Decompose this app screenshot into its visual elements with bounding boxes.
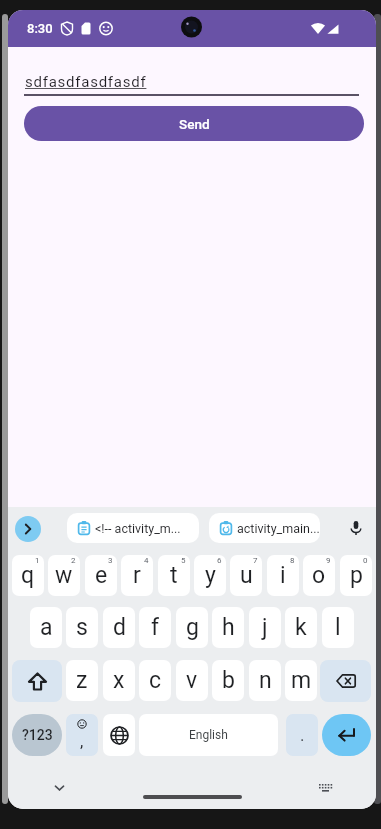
button[interactable]: Send — [24, 106, 364, 141]
staticText: n — [259, 667, 272, 694]
staticText: h — [222, 614, 235, 641]
staticText: i — [280, 562, 286, 589]
button[interactable] — [322, 714, 371, 756]
button[interactable]: z — [66, 660, 98, 701]
staticText: s — [76, 614, 88, 641]
button[interactable]: w — [48, 555, 80, 596]
button[interactable]: d — [103, 607, 135, 648]
staticText: ?123 — [22, 727, 53, 743]
staticText: 0 — [363, 556, 368, 565]
button[interactable]: i — [267, 555, 299, 596]
button[interactable]: c — [139, 660, 171, 701]
button[interactable]: l — [322, 607, 354, 648]
button[interactable]: o — [303, 555, 335, 596]
button[interactable]: a — [30, 607, 62, 648]
button[interactable]: v — [176, 660, 208, 701]
staticText: sdfasdfasdfasdf — [25, 73, 147, 91]
staticText: , — [80, 731, 84, 751]
staticText: . — [300, 725, 305, 745]
staticText: j — [262, 614, 268, 641]
button[interactable]: h — [212, 607, 244, 648]
staticText: w — [55, 562, 73, 589]
staticText: r — [133, 562, 141, 589]
button[interactable]: b — [212, 660, 244, 701]
staticText: v — [186, 667, 198, 694]
button[interactable]: q — [12, 555, 44, 596]
button[interactable]: English — [139, 714, 278, 756]
staticText: t — [170, 562, 178, 589]
staticText: o — [312, 562, 326, 589]
staticText: 4 — [144, 556, 149, 565]
staticText: 9 — [326, 556, 331, 565]
staticText: d — [113, 614, 126, 641]
button[interactable] — [66, 714, 98, 756]
staticText: g — [186, 614, 199, 641]
button[interactable]: p — [340, 555, 372, 596]
staticText: l — [335, 614, 341, 641]
staticText: 7 — [253, 556, 258, 565]
button[interactable]: m — [285, 660, 317, 701]
staticText: English — [189, 728, 228, 742]
button[interactable] — [320, 660, 371, 702]
button[interactable]: f — [139, 607, 171, 648]
staticText: y — [205, 562, 216, 589]
button[interactable]: t — [158, 555, 190, 596]
staticText: 2 — [71, 556, 76, 565]
staticText: m — [291, 667, 312, 694]
button[interactable]: e — [85, 555, 117, 596]
staticText: b — [222, 667, 235, 694]
staticText: 6 — [217, 556, 222, 565]
button[interactable]: s — [66, 607, 98, 648]
staticText: k — [295, 614, 307, 641]
button[interactable]: u — [230, 555, 262, 596]
staticText: 5 — [181, 556, 186, 565]
button[interactable]: <!-- activity_m... — [67, 513, 199, 543]
staticText: p — [350, 562, 363, 589]
staticText: u — [240, 562, 253, 589]
staticText: 8:30 — [27, 21, 53, 36]
staticText: x — [113, 667, 125, 694]
staticText: Send — [179, 116, 210, 132]
staticText: a — [40, 614, 53, 641]
button[interactable] — [12, 660, 62, 702]
staticText: 8 — [290, 556, 295, 565]
staticText: z — [76, 667, 88, 694]
button[interactable]: r — [121, 555, 153, 596]
button[interactable]: k — [285, 607, 317, 648]
button[interactable]: g — [176, 607, 208, 648]
staticText: 1 — [35, 556, 40, 565]
staticText: c — [149, 667, 162, 694]
button[interactable]: activity_main.... — [209, 513, 320, 543]
staticText: e — [95, 562, 108, 589]
button[interactable]: y — [194, 555, 226, 596]
staticText: <!-- activity_m... — [95, 521, 181, 536]
button[interactable]: x — [103, 660, 135, 701]
button[interactable] — [143, 795, 242, 799]
staticText: f — [151, 614, 159, 641]
staticText: 3 — [108, 556, 113, 565]
staticText: activity_main.... — [237, 521, 320, 536]
button[interactable]: ?123 — [12, 714, 62, 756]
button[interactable]: n — [249, 660, 281, 701]
staticText: q — [21, 562, 35, 589]
button[interactable] — [15, 516, 41, 542]
button[interactable]: j — [249, 607, 281, 648]
button[interactable]: . — [286, 714, 318, 756]
button[interactable] — [103, 714, 135, 756]
